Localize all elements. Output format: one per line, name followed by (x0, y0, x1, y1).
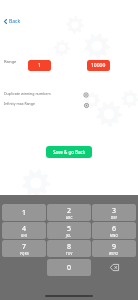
button[interactable]: 1 (2, 204, 46, 221)
staticText: GHI (21, 234, 28, 238)
button[interactable]: 4 (2, 222, 46, 239)
button[interactable]: 9 (92, 240, 136, 257)
staticText: 8 (67, 242, 72, 252)
staticText: 2 (67, 206, 72, 216)
staticText: 4 (22, 224, 27, 234)
staticText: 1 (38, 62, 41, 69)
staticText: 0 (67, 263, 72, 273)
button[interactable]: 8 (47, 240, 91, 257)
staticText: Infinity max Range (4, 101, 35, 106)
button[interactable]: 0 (47, 259, 91, 276)
staticText: Back (9, 18, 21, 25)
staticText: 9 (112, 242, 117, 252)
staticText: JKL (66, 234, 72, 238)
staticText: Range (4, 59, 17, 65)
button[interactable]: 10000 (87, 60, 110, 71)
button[interactable]: 1 (28, 60, 51, 71)
staticText: MNO (110, 234, 119, 238)
staticText: WXYZ (109, 252, 119, 256)
staticText: 10000 (91, 62, 106, 69)
button[interactable]: Delete (92, 259, 136, 276)
button[interactable]: 2 (47, 204, 91, 221)
button[interactable]: Back (2, 14, 21, 28)
button[interactable]: 7 (2, 240, 46, 257)
button[interactable]: Duplicate winning numbers (0, 87, 138, 97)
staticText: ABC (66, 216, 73, 220)
staticText: Duplicate winning numbers (4, 91, 51, 96)
button[interactable]: 3 (92, 204, 136, 221)
staticText: 3 (112, 206, 117, 216)
button[interactable]: 6 (92, 222, 136, 239)
staticText: DEF (111, 216, 118, 220)
staticText: PQRS (20, 252, 29, 256)
staticText: 1 (22, 208, 27, 218)
button[interactable]: Infinity max Range (0, 97, 138, 107)
staticText: 5 (67, 224, 72, 234)
staticText: 7 (22, 242, 27, 252)
button[interactable]: Save & go Back (46, 146, 92, 158)
staticText: TUV (66, 252, 73, 256)
button[interactable]: 5 (47, 222, 91, 239)
staticText: Save & go Back (53, 149, 86, 155)
staticText: 6 (112, 224, 117, 234)
